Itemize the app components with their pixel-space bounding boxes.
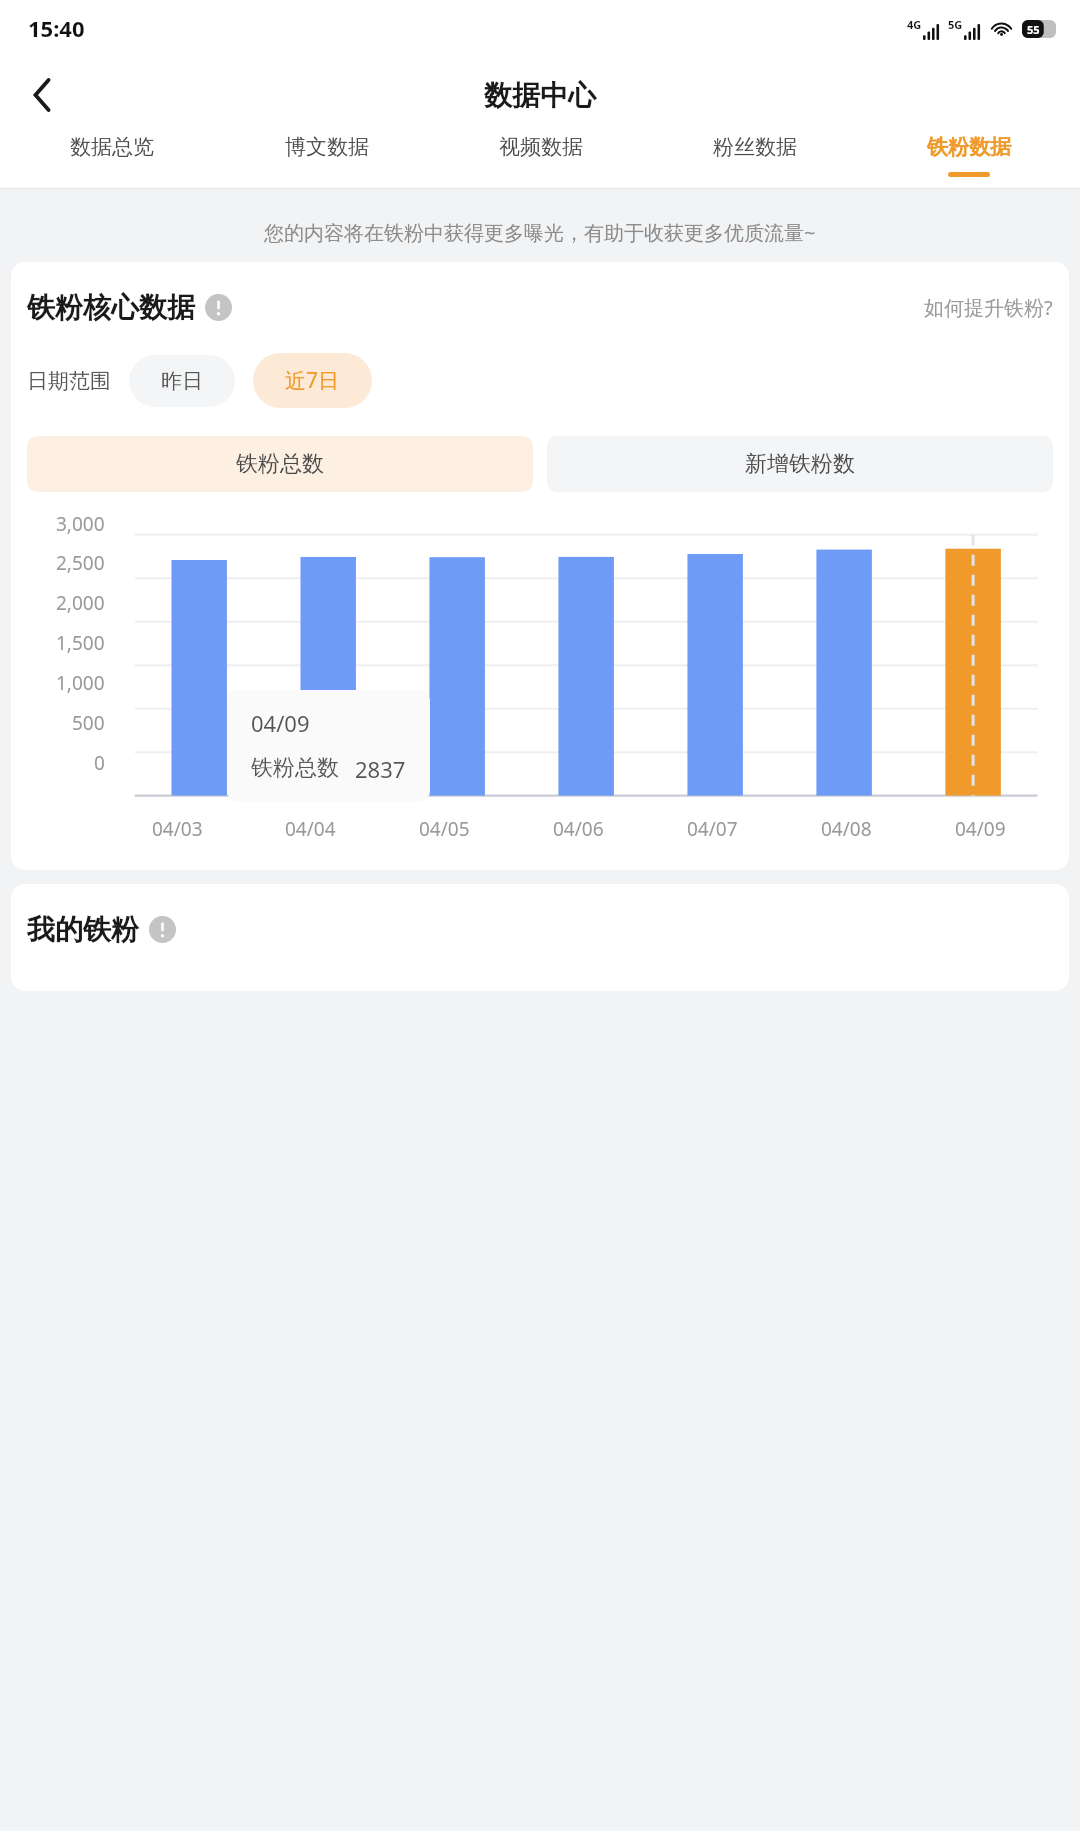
staticText: 近7日 bbox=[285, 366, 340, 395]
staticText: 04/09 bbox=[251, 708, 310, 738]
button[interactable]: 铁粉数据 bbox=[862, 134, 1076, 188]
staticText: 博文数据 bbox=[285, 134, 369, 160]
staticText: 2837 bbox=[355, 754, 406, 784]
staticText: 数据中心 bbox=[484, 78, 596, 113]
staticText: 04/07 bbox=[687, 816, 738, 842]
staticText: 视频数据 bbox=[499, 134, 583, 160]
staticText: 15:40 bbox=[28, 13, 85, 43]
staticText: 昨日 bbox=[161, 368, 203, 394]
staticText: 我的铁粉 bbox=[27, 912, 139, 947]
button[interactable]: 粉丝数据 bbox=[648, 134, 862, 188]
button[interactable]: 如何提升铁粉? bbox=[924, 294, 1053, 321]
staticText: 2,500 bbox=[56, 550, 105, 576]
button[interactable]: 昨日 bbox=[129, 355, 235, 407]
staticText: 0 bbox=[94, 750, 105, 776]
button[interactable]: 近7日 bbox=[253, 353, 372, 408]
button[interactable]: Back bbox=[12, 65, 72, 125]
staticText: 粉丝数据 bbox=[713, 134, 797, 160]
staticText: 500 bbox=[72, 710, 105, 736]
staticText: 4G bbox=[907, 17, 922, 32]
staticText: 铁粉核心数据 bbox=[27, 290, 195, 325]
staticText: 55 bbox=[1027, 22, 1040, 37]
staticText: 铁粉数据 bbox=[927, 134, 1011, 160]
staticText: 铁粉总数 bbox=[236, 450, 324, 478]
staticText: 5G bbox=[948, 17, 963, 32]
staticText: 新增铁粉数 bbox=[745, 450, 855, 478]
button[interactable]: Info bbox=[205, 294, 232, 321]
staticText: 04/04 bbox=[285, 816, 336, 842]
button[interactable]: 视频数据 bbox=[434, 134, 648, 188]
button[interactable]: 数据总览 bbox=[4, 134, 219, 188]
staticText: 日期范围 bbox=[27, 368, 111, 394]
button[interactable]: Info bbox=[149, 916, 176, 943]
staticText: 04/06 bbox=[553, 816, 604, 842]
staticText: 您的内容将在铁粉中获得更多曝光，有助于收获更多优质流量~ bbox=[264, 219, 816, 246]
staticText: 3,000 bbox=[56, 511, 105, 537]
staticText: 数据总览 bbox=[70, 134, 154, 160]
staticText: 1,000 bbox=[56, 670, 105, 696]
staticText: 2,000 bbox=[56, 590, 105, 616]
button[interactable]: 铁粉总数 bbox=[27, 436, 533, 492]
staticText: 1,500 bbox=[56, 630, 105, 656]
staticText: 如何提升铁粉? bbox=[924, 294, 1053, 321]
staticText: 04/09 bbox=[955, 816, 1006, 842]
staticText: 04/08 bbox=[821, 816, 872, 842]
staticText: 04/05 bbox=[419, 816, 470, 842]
staticText: 04/03 bbox=[152, 816, 203, 842]
staticText: 铁粉总数 bbox=[251, 754, 339, 782]
button[interactable]: 博文数据 bbox=[219, 134, 434, 188]
button[interactable]: 新增铁粉数 bbox=[547, 436, 1053, 492]
